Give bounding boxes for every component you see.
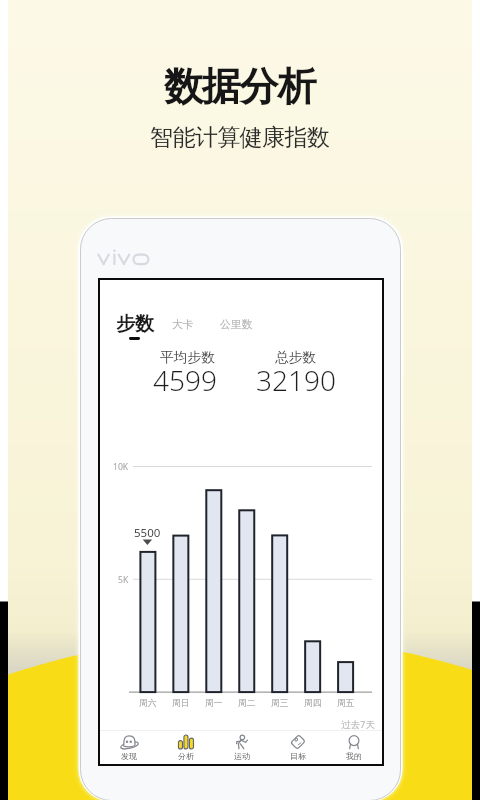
button[interactable]: 目标 bbox=[270, 730, 326, 766]
staticText: 过去7天 bbox=[100, 718, 375, 731]
staticText: 步数 bbox=[116, 312, 154, 336]
button[interactable]: 运动 bbox=[214, 730, 270, 766]
staticText: 周五 bbox=[337, 698, 355, 709]
staticText: 智能计算健康指数 bbox=[150, 123, 330, 152]
staticText: 平均步数 bbox=[160, 349, 216, 366]
staticText: 发现 bbox=[121, 751, 137, 761]
staticText: 数据分析 bbox=[164, 62, 316, 111]
button[interactable]: 分析 bbox=[157, 730, 214, 766]
staticText: 10K bbox=[113, 461, 129, 473]
staticText: 周二 bbox=[238, 698, 256, 709]
staticText: 分析 bbox=[178, 751, 194, 761]
staticText: 我的 bbox=[346, 751, 362, 761]
button[interactable]: 大卡 bbox=[172, 318, 194, 332]
staticText: 周六 bbox=[139, 698, 157, 709]
button[interactable]: 步数 bbox=[116, 312, 154, 339]
button[interactable]: 我的 bbox=[326, 730, 382, 766]
staticText: 32190 bbox=[256, 361, 336, 399]
staticText: 周日 bbox=[172, 698, 190, 709]
staticText: 目标 bbox=[290, 751, 306, 761]
staticText: 周四 bbox=[304, 698, 322, 709]
staticText: 4599 bbox=[153, 361, 217, 399]
button[interactable]: 发现 bbox=[100, 730, 157, 766]
staticText: 周一 bbox=[205, 698, 223, 709]
button[interactable]: 公里数 bbox=[220, 318, 253, 332]
staticText: 5500 bbox=[134, 525, 161, 541]
staticText: 周三 bbox=[271, 698, 289, 709]
staticText: 运动 bbox=[234, 751, 250, 761]
staticText: 5K bbox=[118, 574, 129, 586]
staticText: 总步数 bbox=[275, 349, 317, 366]
